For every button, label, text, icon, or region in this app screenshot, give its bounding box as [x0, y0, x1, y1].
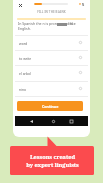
staticText: Continue: [42, 104, 59, 109]
staticText: In Spanish the n is pronounced like: [18, 21, 76, 26]
button[interactable]: Home: [49, 117, 57, 125]
button[interactable]: Back: [27, 117, 35, 125]
button[interactable]: Continue: [17, 101, 83, 111]
button[interactable]: to write: [15, 50, 88, 65]
staticText: 5: [82, 2, 85, 7]
button[interactable]: word: [15, 35, 88, 50]
button[interactable]: Recents: [67, 117, 75, 125]
staticText: Lessons created by expert linguists: [26, 153, 79, 168]
button[interactable]: Lives: [78, 1, 86, 9]
button[interactable]: Close: [16, 1, 24, 9]
button[interactable]: el arbol: [15, 65, 88, 80]
staticText: nino: [19, 87, 27, 92]
staticText: English.: [18, 26, 31, 31]
staticText: in.: [69, 21, 74, 26]
staticText: word: [19, 41, 28, 46]
staticText: FILL IN THE BLANK: [15, 10, 88, 14]
staticText: el arbol: [19, 71, 31, 76]
staticText: to write: [19, 56, 32, 61]
button[interactable]: nino: [15, 81, 88, 96]
